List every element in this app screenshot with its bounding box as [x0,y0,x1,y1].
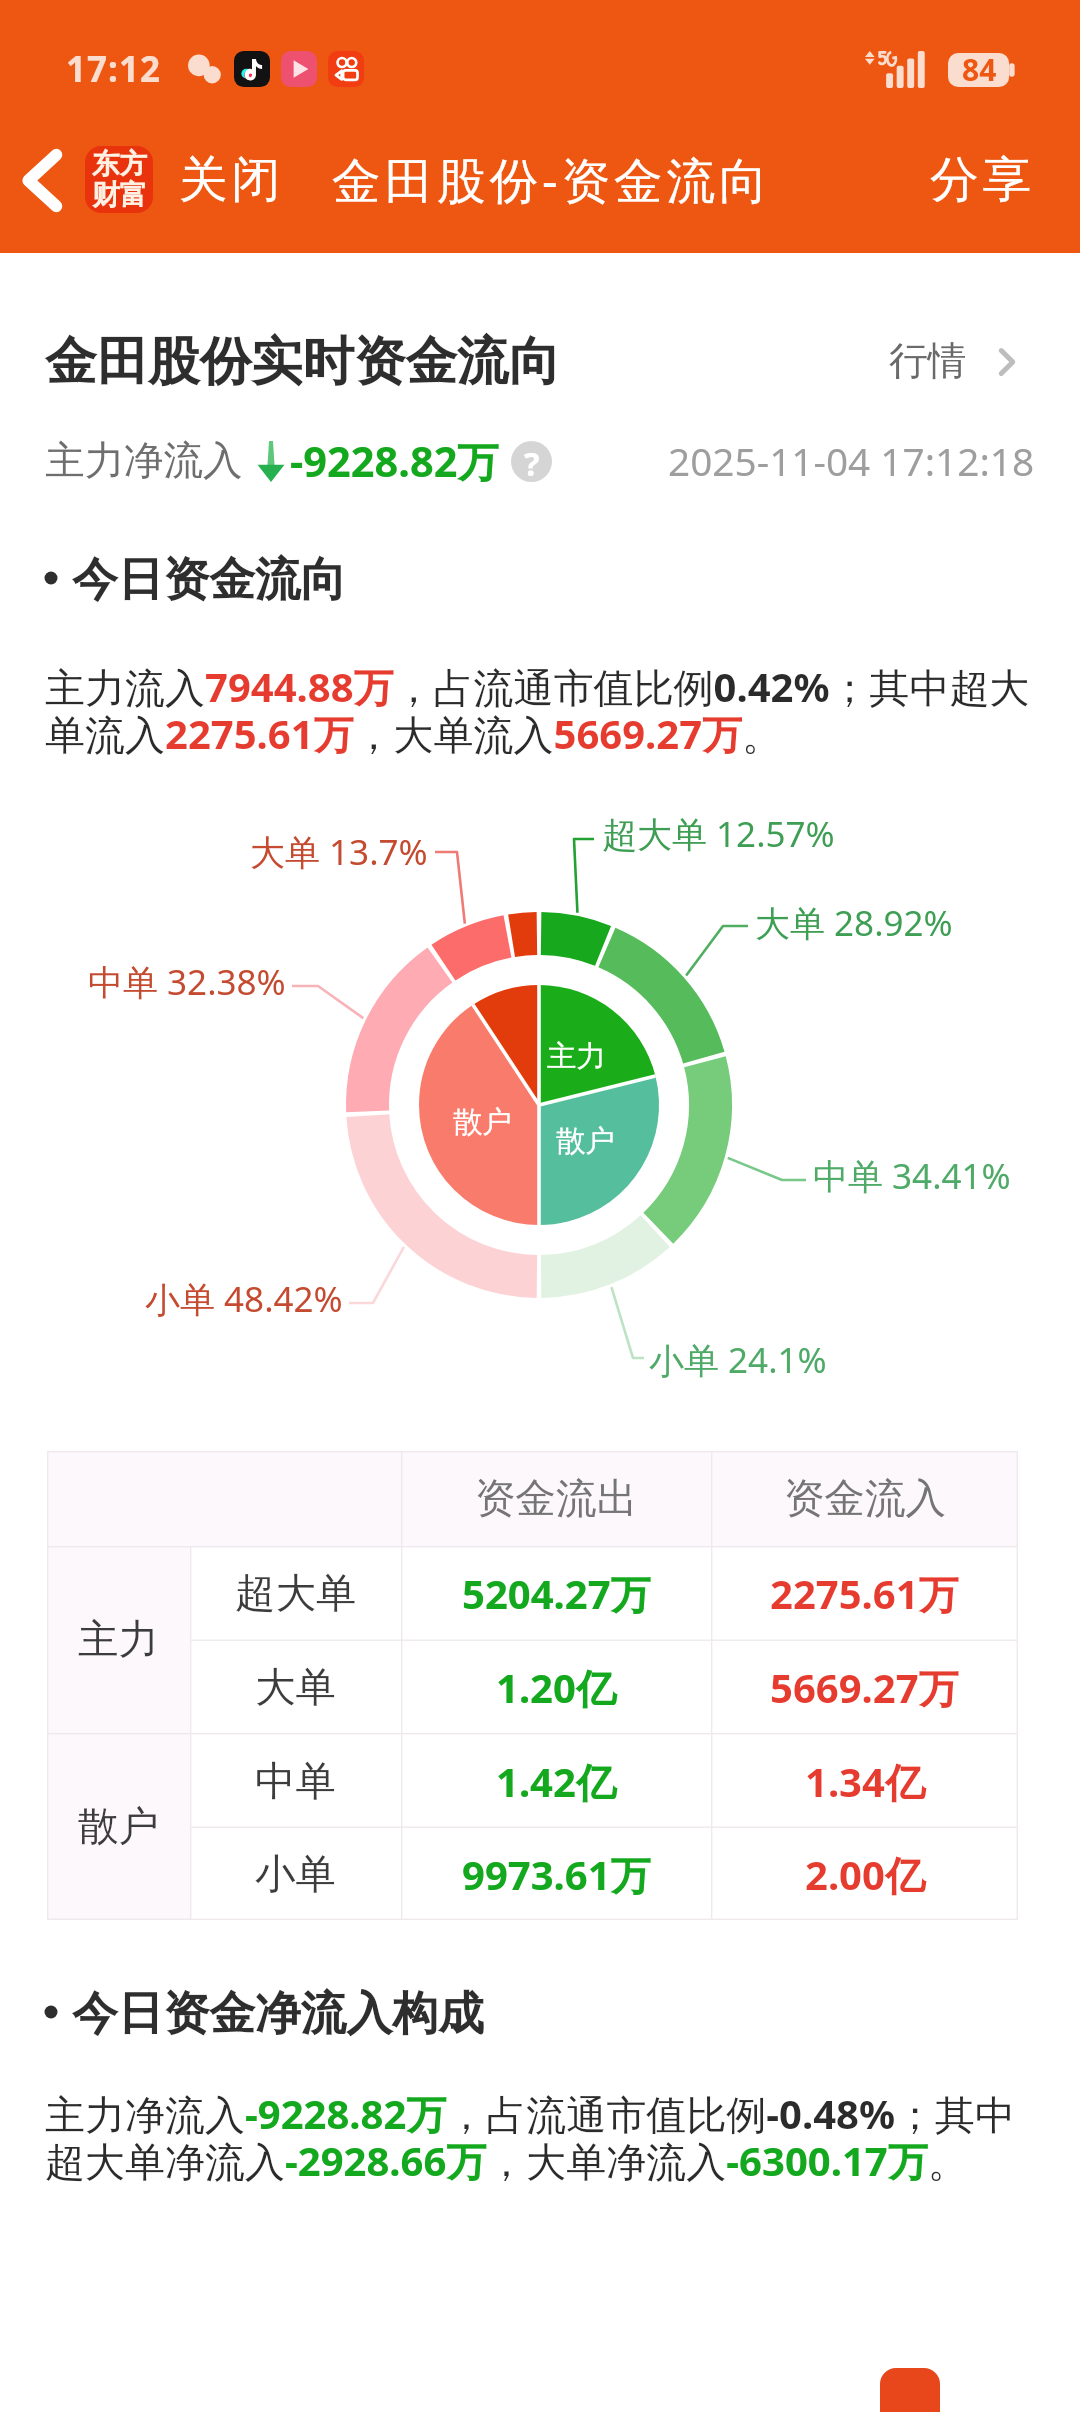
staticText: 小单 24.1% [649,1336,827,1384]
staticText: 散户 [78,1801,159,1852]
staticText: 今日资金净流入构成 [72,1985,484,2039]
staticText: ? [524,441,540,482]
staticText: 主力 [547,1038,606,1075]
staticText: 5669.27万 [770,1660,959,1715]
staticText: 84 [962,49,997,90]
staticText: 大单 [255,1662,336,1713]
button[interactable]: 分享 [928,149,1080,210]
staticText: 17:12 [66,45,161,93]
staticText: 东方 财富 [92,147,147,212]
staticText: 9973.61万 [462,1847,651,1902]
staticText: 2.00亿 [805,1847,925,1902]
staticText: 散户 [556,1123,615,1160]
staticText: 资金流出 [475,1473,637,1524]
staticText: 5204.27万 [462,1566,651,1621]
staticText: 小单 48.42% [145,1275,343,1323]
button[interactable]: 关闭 [177,149,282,210]
staticText: 1.20亿 [496,1660,616,1715]
staticText: 1.34亿 [805,1754,925,1809]
staticText: 主力净流入-9228.82万，占流通市值比例-0.48%；其中超大单净流入-29… [45,2086,1035,2188]
staticText: 中单 34.41% [813,1152,1011,1200]
staticText: -9228.82万 [290,433,499,490]
staticText: 小单 [255,1849,336,1900]
button[interactable]: Back [0,135,84,225]
staticText: 今日资金流向 [72,551,347,605]
staticText: 资金流入 [784,1473,946,1524]
staticText: 主力 [78,1614,159,1665]
button[interactable]: 行情 [889,337,1015,386]
staticText: 2025-11-04 17:12:18 [668,435,1035,488]
staticText: 中单 [255,1756,336,1807]
staticText: 超大单 12.57% [602,810,835,858]
staticText: 1.42亿 [496,1754,616,1809]
staticText: 大单 28.92% [755,899,953,947]
staticText: 金田股份实时资金流向 [45,329,560,394]
button[interactable]: Quick action [880,2368,940,2412]
staticText: 散户 [453,1104,512,1141]
staticText: 2275.61万 [770,1566,959,1621]
staticText: 大单 13.7% [250,828,428,876]
staticText: 主力流入7944.88万，占流通市值比例0.42%；其中超大单流入2275.61… [45,659,1035,761]
staticText: 中单 32.38% [88,958,286,1006]
staticText: 金田股份-资金流向 [332,146,772,213]
staticText: 主力净流入 [45,436,243,486]
staticText: 超大单 [235,1568,357,1619]
button[interactable]: Help [511,441,552,482]
staticText: 行情 [889,337,967,386]
